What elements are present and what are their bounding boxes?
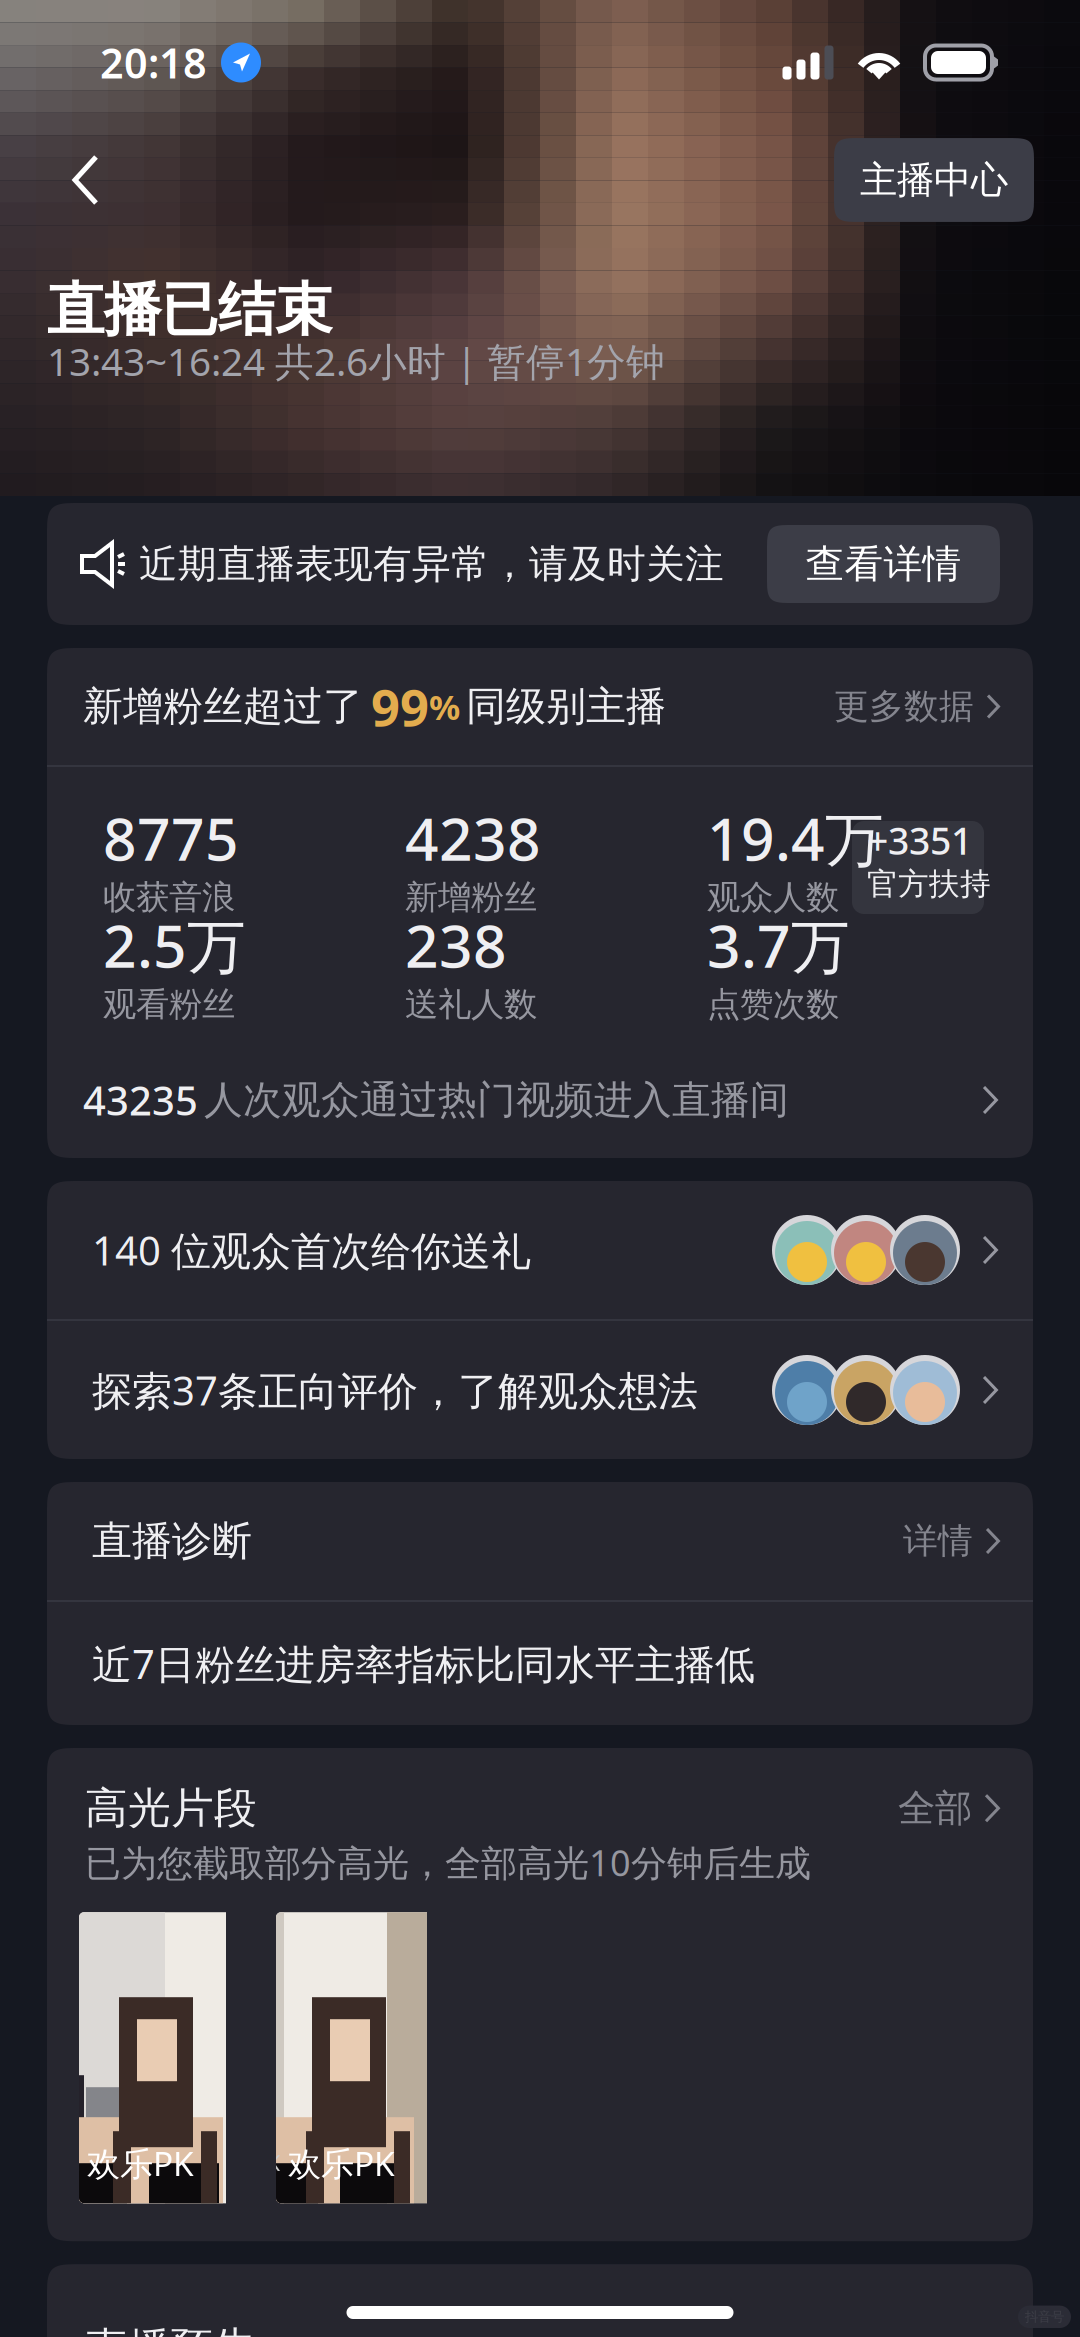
button[interactable]: 主播中心 (834, 138, 1034, 222)
staticText: 新增粉丝 (405, 877, 537, 918)
staticText: 238 (405, 906, 507, 984)
staticText: 直播诊断 (92, 1516, 252, 1565)
staticText: 收获音浪 (103, 877, 235, 918)
staticText: 已为您截取部分高光，全部高光10分钟后生成 (85, 1838, 811, 1886)
staticText: 3.7万 (707, 906, 850, 984)
staticText: 更多数据 (834, 685, 974, 728)
staticText: 43235 (83, 1073, 198, 1126)
button[interactable]: 新增粉丝超过了 (47, 648, 1033, 765)
button[interactable]: Highlight clip (79, 1912, 266, 2203)
staticText: 抖音号 (1025, 2309, 1064, 2325)
staticText: 点赞次数 (707, 984, 839, 1025)
staticText: 观众人数 (707, 877, 839, 918)
staticText: 高光片段 (85, 1782, 257, 1834)
staticText: 新增粉丝超过了 (83, 682, 363, 731)
staticText: 观看粉丝 (103, 984, 235, 1025)
staticText: 欢乐PK (288, 2141, 395, 2185)
staticText: 同级别主播 (466, 682, 666, 731)
staticText: PK (254, 2149, 280, 2177)
button[interactable]: Back (0, 137, 134, 223)
staticText: 近7日粉丝进房率指标比同水平主播低 (92, 1637, 755, 1690)
staticText: 直播已结束 (47, 275, 332, 345)
button[interactable]: 43235 (47, 1042, 1033, 1158)
staticText: 直播预告 (85, 2322, 257, 2337)
staticText: 13:43~16:24 共2.6小时 | 暂停1分钟 (47, 335, 665, 387)
staticText: 欢乐PK (87, 2141, 194, 2185)
staticText: 4238 (405, 799, 541, 877)
button[interactable]: 高光片段 (47, 1748, 1033, 1838)
staticText: 20:18 (100, 35, 207, 90)
staticText: 人次观众通过热门视频进入直播间 (204, 1076, 789, 1124)
staticText: 99 (371, 673, 429, 740)
staticText: 近期直播表现有异常，请及时关注 (139, 540, 724, 588)
staticText: 详情 (903, 1520, 973, 1562)
staticText: 探索37条正向评价，了解观众想法 (92, 1363, 698, 1416)
staticText: 8775 (103, 799, 239, 877)
staticText: % (429, 683, 460, 729)
staticText: 主播中心 (860, 157, 1008, 203)
staticText: 查看详情 (805, 540, 961, 588)
button[interactable]: Highlight clip (276, 1912, 463, 2203)
button[interactable]: 140 位观众首次给你送礼 (47, 1181, 1033, 1319)
button[interactable]: 近期直播表现有异常，请及时关注 (47, 503, 1033, 625)
button[interactable]: 直播诊断 (47, 1482, 1033, 1600)
staticText: 140 位观众首次给你送礼 (92, 1223, 531, 1276)
staticText: 19.4万 (707, 799, 884, 877)
staticText: 送礼人数 (405, 984, 537, 1025)
staticText: 官方扶持 (867, 865, 991, 903)
staticText: 2.5万 (103, 906, 246, 984)
staticText: +3351 (867, 815, 972, 865)
button[interactable]: 探索37条正向评价，了解观众想法 (47, 1321, 1033, 1459)
staticText: 全部 (898, 1785, 972, 1831)
